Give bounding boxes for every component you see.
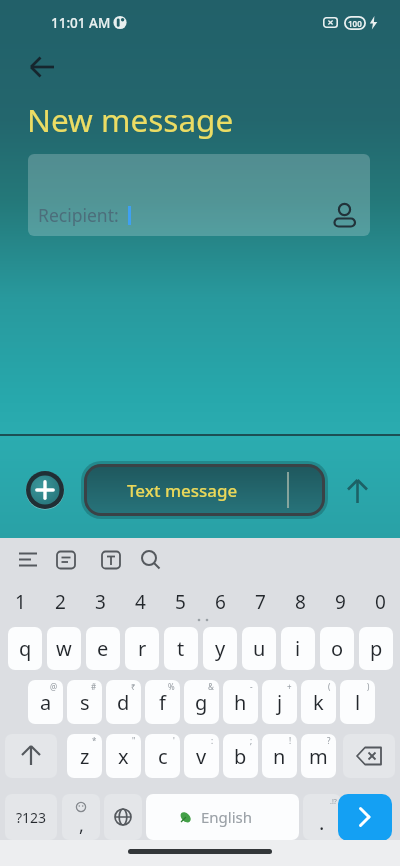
staticText: Recipient: (38, 203, 119, 227)
button[interactable]: q (8, 627, 42, 670)
staticText: ) (367, 681, 370, 692)
staticText: u (253, 635, 266, 662)
button[interactable]: i (281, 627, 315, 670)
staticText: 4 (135, 589, 146, 615)
button[interactable]: m (301, 734, 336, 778)
staticText: j (277, 689, 283, 716)
button[interactable]: z (67, 734, 102, 778)
staticText: English (201, 807, 253, 827)
staticText: ₹ (131, 681, 136, 692)
staticText: w (56, 635, 72, 662)
staticText: m (309, 743, 328, 770)
button[interactable]: t (164, 627, 198, 670)
button[interactable] (99, 548, 123, 572)
staticText: d (117, 689, 130, 716)
button[interactable]: y (203, 627, 237, 670)
staticText: l (355, 689, 361, 716)
button[interactable]: Text message (84, 464, 325, 516)
staticText: b (234, 743, 247, 770)
button[interactable]: 8 (282, 584, 318, 620)
button[interactable]: a (28, 680, 63, 724)
staticText: 1 (15, 589, 26, 615)
staticText: p (370, 635, 383, 662)
button[interactable]: l (340, 680, 375, 724)
button[interactable]: English (146, 794, 299, 840)
staticText: # (91, 681, 97, 692)
staticText: , (79, 813, 84, 838)
staticText: x (118, 743, 129, 770)
staticText: Text message (127, 479, 238, 502)
staticText: k (313, 689, 324, 716)
button[interactable]: d (106, 680, 141, 724)
staticText: 100 (348, 18, 362, 29)
staticText: * (92, 735, 97, 746)
button[interactable]: p (359, 627, 393, 670)
staticText: 8 (295, 589, 306, 615)
staticText: 0 (375, 589, 386, 615)
button[interactable]: 3 (82, 584, 118, 620)
button[interactable] (138, 546, 164, 572)
button[interactable] (343, 476, 373, 506)
button[interactable]: 4 (122, 584, 158, 620)
button[interactable]: 6 (202, 584, 238, 620)
staticText: " (132, 735, 136, 746)
staticText: @ (50, 681, 58, 692)
staticText: 7 (255, 589, 266, 615)
button[interactable]: Recipient: (28, 154, 370, 236)
button[interactable]: 5 (162, 584, 198, 620)
staticText: 2 (55, 589, 66, 615)
button[interactable] (16, 548, 40, 572)
staticText: 3 (95, 589, 106, 615)
staticText: 6 (215, 589, 226, 615)
button[interactable] (5, 734, 57, 778)
staticText: ?123 (16, 808, 47, 827)
button[interactable]: 2 (42, 584, 78, 620)
button[interactable]: w (47, 627, 81, 670)
button[interactable] (104, 794, 142, 840)
staticText: h (234, 689, 247, 716)
staticText: c (158, 743, 168, 770)
staticText: 5 (175, 589, 186, 615)
staticText: 11:01 AM (51, 14, 111, 32)
button[interactable] (22, 50, 62, 84)
staticText: z (80, 743, 90, 770)
button[interactable]: v (184, 734, 219, 778)
button[interactable]: k (301, 680, 336, 724)
button[interactable]: j (262, 680, 297, 724)
button[interactable]: r (125, 627, 159, 670)
button[interactable]: e (86, 627, 120, 670)
button[interactable]: 0 (362, 584, 398, 620)
button[interactable]: f (145, 680, 180, 724)
staticText: - (250, 681, 253, 692)
button[interactable]: g (184, 680, 219, 724)
staticText: q (19, 635, 32, 662)
button[interactable]: c (145, 734, 180, 778)
staticText: . (319, 809, 325, 836)
button[interactable]: b (223, 734, 258, 778)
staticText: t (177, 635, 185, 662)
staticText: ? (327, 735, 331, 746)
staticText: o (331, 635, 344, 662)
staticText: : (211, 735, 214, 746)
staticText: v (196, 743, 207, 770)
staticText: ; (250, 735, 253, 746)
button[interactable]: 9 (322, 584, 358, 620)
button[interactable]: , (62, 794, 100, 840)
staticText: g (195, 689, 208, 716)
button[interactable]: n (262, 734, 297, 778)
button[interactable]: x (106, 734, 141, 778)
staticText: i (295, 635, 301, 662)
button[interactable]: h (223, 680, 258, 724)
button[interactable]: 1 (2, 584, 38, 620)
button[interactable]: o (320, 627, 354, 670)
button[interactable] (25, 470, 65, 510)
button[interactable]: 7 (242, 584, 278, 620)
button[interactable]: . (303, 794, 341, 840)
button[interactable]: ?123 (5, 794, 57, 840)
button[interactable] (343, 734, 395, 778)
button[interactable] (338, 794, 392, 841)
staticText: .!? (330, 797, 337, 807)
button[interactable]: s (67, 680, 102, 724)
button[interactable]: u (242, 627, 276, 670)
button[interactable] (54, 548, 78, 572)
